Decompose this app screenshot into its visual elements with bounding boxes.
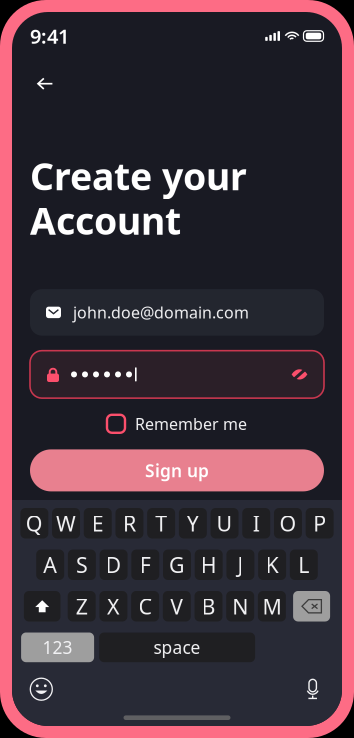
staticText: K (266, 551, 279, 579)
staticText: R (123, 509, 136, 537)
staticText: E (92, 509, 104, 537)
button[interactable]: N (226, 591, 254, 621)
button[interactable]: Y (179, 508, 207, 538)
staticText: A (43, 551, 57, 579)
button[interactable]: V (163, 591, 191, 621)
staticText: Z (76, 592, 88, 620)
button[interactable]: A (36, 549, 64, 580)
staticText: Y (187, 509, 199, 537)
button[interactable]: J (226, 549, 254, 580)
button[interactable]: Emoji (24, 672, 58, 706)
staticText: N (232, 592, 248, 620)
staticText: G (169, 551, 185, 579)
button[interactable]: X (99, 591, 127, 621)
staticText: H (201, 551, 217, 579)
staticText: M (262, 592, 281, 620)
button[interactable]: Delete (293, 591, 330, 621)
button[interactable]: H (195, 549, 223, 580)
button[interactable]: Remember me (107, 413, 247, 434)
button[interactable]: G (163, 549, 191, 580)
staticText: P (313, 509, 326, 537)
staticText: W (56, 509, 76, 537)
staticText: john.doe@domain.com (73, 302, 249, 323)
staticText: space (154, 636, 201, 659)
button[interactable]: Dictate (296, 672, 330, 706)
button[interactable]: F (131, 549, 159, 580)
button[interactable]: E (84, 508, 112, 538)
button[interactable]: M (258, 591, 286, 621)
staticText: J (237, 551, 243, 579)
button[interactable]: L (290, 549, 318, 580)
staticText: X (107, 592, 120, 620)
button[interactable]: Back (30, 70, 60, 98)
button[interactable]: I (242, 508, 270, 538)
staticText: V (170, 592, 183, 620)
button[interactable]: O (274, 508, 302, 538)
button[interactable]: R (115, 508, 143, 538)
staticText: Create your (30, 151, 247, 201)
staticText: Q (26, 509, 43, 537)
button[interactable]: U (210, 508, 238, 538)
button[interactable]: W (52, 508, 80, 538)
button[interactable]: Z (68, 591, 96, 621)
button[interactable]: T (147, 508, 175, 538)
button[interactable]: 123 (21, 632, 94, 662)
button[interactable]: Q (20, 508, 48, 538)
staticText: C (139, 592, 152, 620)
staticText: T (155, 509, 167, 537)
staticText: B (201, 592, 215, 620)
button[interactable]: space (99, 632, 255, 662)
button[interactable]: D (100, 549, 128, 580)
button[interactable]: S (68, 549, 96, 580)
button[interactable]: Sign up (30, 449, 324, 491)
staticText: L (298, 551, 309, 579)
button[interactable]: Shift (24, 591, 60, 621)
staticText: D (106, 551, 122, 579)
staticText: 123 (43, 636, 73, 659)
button[interactable]: K (258, 549, 286, 580)
staticText: S (76, 551, 88, 579)
button[interactable]: P (306, 508, 334, 538)
staticText: U (216, 509, 232, 537)
button[interactable]: Show password (291, 367, 308, 381)
button[interactable]: C (131, 591, 159, 621)
staticText: Sign up (145, 459, 209, 482)
staticText: O (279, 509, 296, 537)
staticText: I (253, 509, 260, 537)
staticText: 9:41 (30, 23, 69, 49)
staticText: F (140, 551, 151, 579)
button[interactable]: B (194, 591, 222, 621)
staticText: Account (30, 196, 181, 245)
staticText: Remember me (135, 413, 247, 434)
